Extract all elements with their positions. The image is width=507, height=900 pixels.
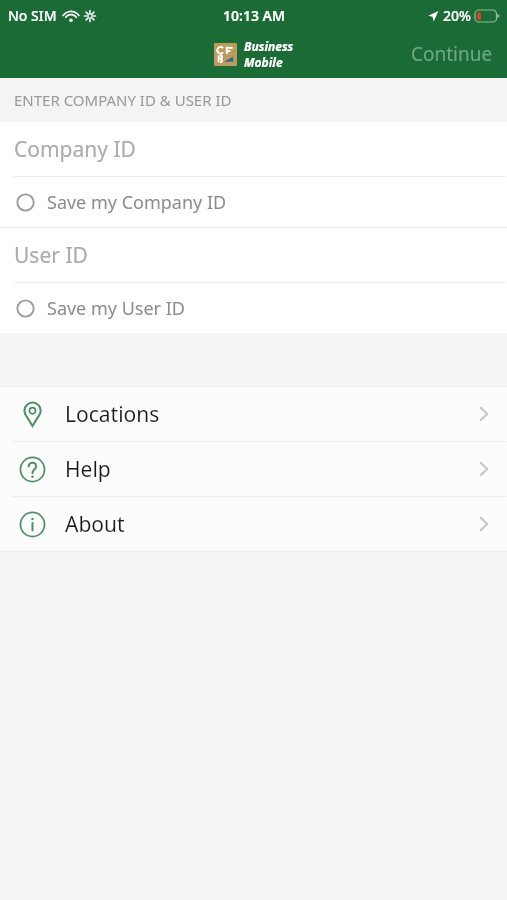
- staticText: 10:13 AM: [223, 6, 285, 25]
- staticText: Save my Company ID: [47, 190, 227, 215]
- button[interactable]: User ID: [0, 228, 507, 282]
- staticText: 20%: [443, 6, 471, 25]
- button[interactable]: Company ID: [0, 122, 507, 176]
- button[interactable]: About: [0, 497, 507, 551]
- staticText: Continue: [411, 41, 493, 67]
- staticText: Save my User ID: [47, 296, 185, 321]
- staticText: No SIM: [8, 6, 57, 25]
- button[interactable]: Save my User ID: [0, 283, 507, 333]
- staticText: User ID: [14, 241, 88, 270]
- button[interactable]: Save my Company ID: [0, 177, 507, 227]
- staticText: Locations: [65, 400, 479, 429]
- staticText: Help: [65, 455, 479, 484]
- staticText: Mobile: [244, 54, 283, 70]
- button[interactable]: Continue: [397, 31, 507, 77]
- staticText: Company ID: [14, 135, 136, 164]
- staticText: About: [65, 510, 479, 539]
- staticText: ENTER COMPANY ID & USER ID: [14, 90, 232, 110]
- button[interactable]: Locations: [0, 387, 507, 441]
- button[interactable]: Help: [0, 442, 507, 496]
- staticText: Business: [244, 38, 294, 54]
